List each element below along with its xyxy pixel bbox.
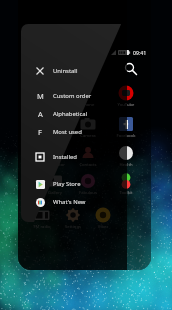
staticText: Camera bbox=[73, 133, 103, 139]
button[interactable]: Gallery bbox=[40, 173, 70, 196]
staticText: Uninstall bbox=[53, 67, 78, 75]
button[interactable]: Facebook bbox=[111, 116, 141, 139]
button[interactable]: Installed bbox=[21, 148, 130, 166]
staticText: FM radio bbox=[27, 224, 57, 230]
button[interactable]: Settings bbox=[58, 207, 88, 230]
staticText: Phone bbox=[73, 102, 103, 108]
button[interactable]: Viber bbox=[88, 207, 118, 230]
button[interactable]: FM radio bbox=[27, 207, 57, 230]
button[interactable]: YouTube bbox=[111, 85, 141, 108]
staticText: Settings bbox=[58, 224, 88, 230]
staticText: Calculator bbox=[40, 162, 70, 168]
staticText: F bbox=[38, 127, 42, 137]
staticText: Most used bbox=[53, 128, 82, 136]
staticText: Fabulous bbox=[73, 190, 103, 196]
button[interactable]: Phone bbox=[73, 85, 103, 108]
button[interactable]: F bbox=[21, 123, 130, 141]
button[interactable]: Uninstall bbox=[21, 62, 130, 80]
button[interactable]: What's New bbox=[21, 193, 130, 211]
staticText: Toolkit bbox=[111, 190, 141, 196]
staticText: Viber bbox=[88, 224, 118, 230]
staticText: A bbox=[38, 109, 43, 119]
staticText: 09:41 bbox=[133, 49, 147, 56]
button[interactable]: M bbox=[21, 87, 130, 105]
button[interactable]: Contacts bbox=[73, 145, 103, 168]
button[interactable]: Toolkit bbox=[111, 173, 141, 196]
staticText: M bbox=[37, 91, 44, 101]
staticText: Gallery bbox=[40, 190, 70, 196]
button[interactable]: Calculator bbox=[40, 145, 70, 168]
staticText: Installed bbox=[53, 153, 77, 161]
button[interactable]: Calendar bbox=[40, 85, 70, 108]
staticText: What's New bbox=[53, 198, 86, 206]
button[interactable]: Search bbox=[124, 62, 138, 76]
staticText: Contacts bbox=[73, 162, 103, 168]
button[interactable]: Fabulous bbox=[73, 173, 103, 196]
button[interactable]: Clock bbox=[40, 116, 70, 139]
staticText: Alphabetical bbox=[53, 110, 88, 118]
button[interactable]: Health bbox=[111, 145, 141, 168]
button[interactable]: Camera bbox=[73, 116, 103, 139]
staticText: Facebook bbox=[111, 133, 141, 139]
staticText: Custom order bbox=[53, 92, 92, 100]
button[interactable]: A bbox=[21, 105, 130, 123]
staticText: YouTube bbox=[111, 102, 141, 108]
staticText: Play Store bbox=[53, 180, 81, 188]
staticText: Health bbox=[111, 162, 141, 168]
button[interactable]: Play Store bbox=[21, 175, 130, 193]
staticText: Clock bbox=[40, 133, 70, 139]
